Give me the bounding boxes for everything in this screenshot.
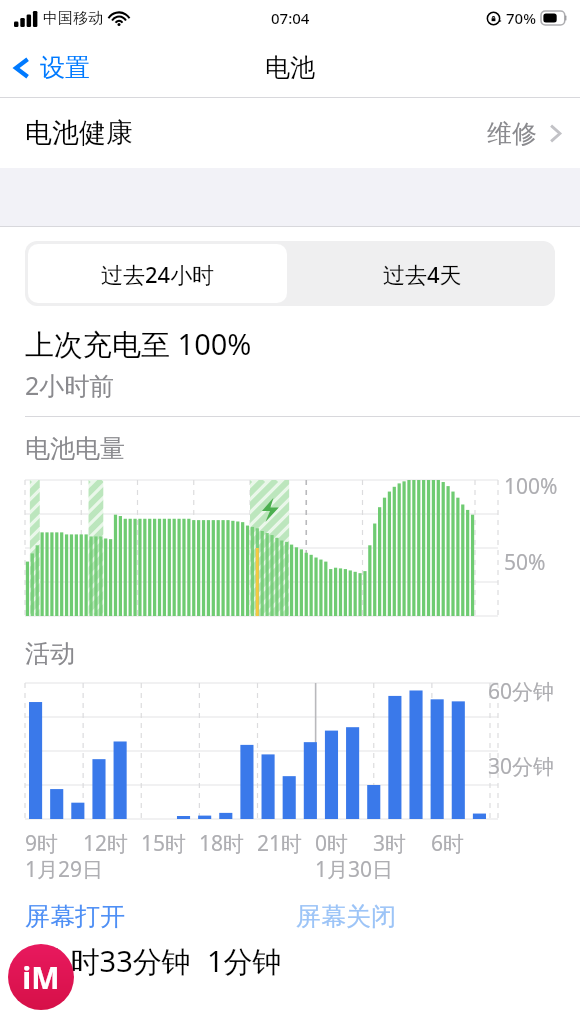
button[interactable]: 电池健康 (0, 98, 580, 168)
staticText: 2小时前 (25, 368, 115, 402)
staticText: 18时 (199, 829, 245, 858)
staticText: 07:04 (271, 8, 310, 28)
staticText: 屏幕打开 (25, 901, 125, 932)
staticText: 1月30日 (315, 855, 394, 884)
staticText: 设置 (40, 52, 90, 83)
staticText: 15时 (141, 829, 187, 858)
staticText: 过去4天 (383, 259, 462, 289)
staticText: 活动 (25, 638, 75, 669)
staticText: 21时 (257, 829, 303, 858)
staticText: 过去24小时 (101, 259, 215, 289)
staticText: 上次充电至 100% (25, 324, 252, 364)
staticText: 1分钟 (207, 941, 282, 981)
staticText: 30分钟 (488, 752, 555, 781)
staticText: 3时 (373, 829, 407, 858)
staticText: 60分钟 (488, 677, 555, 706)
staticText: 50% (504, 548, 546, 577)
staticText: 12时 (83, 829, 129, 858)
staticText: 70% (506, 8, 536, 28)
staticText: 维修 (487, 118, 537, 149)
staticText: 中国移动 (43, 9, 103, 28)
staticText: 100% (504, 472, 558, 501)
button[interactable]: 过去24小时 (28, 244, 287, 303)
staticText: iM (22, 957, 60, 998)
staticText: 电池电量 (25, 433, 125, 464)
button[interactable]: 设置 (0, 46, 100, 89)
staticText: 6时 (431, 829, 465, 858)
staticText: 电池 (265, 52, 315, 83)
staticText: 8小时33分钟 (25, 941, 191, 981)
staticText: 屏幕关闭 (296, 901, 396, 932)
staticText: 9时 (25, 829, 59, 858)
staticText: 电池健康 (25, 116, 133, 150)
staticText: 1月29日 (25, 855, 104, 884)
button[interactable]: 过去4天 (290, 241, 555, 306)
staticText: 0时 (315, 829, 349, 858)
